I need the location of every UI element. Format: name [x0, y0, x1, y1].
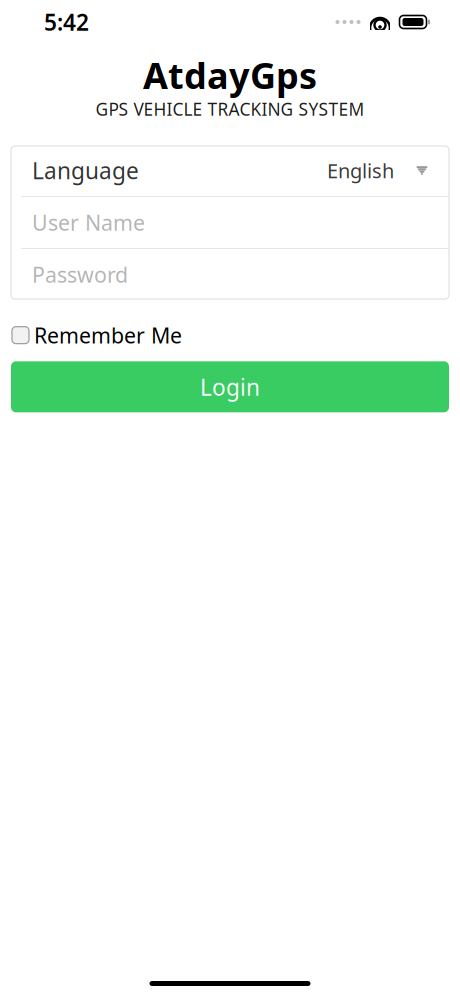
button[interactable]: Language	[11, 145, 449, 196]
staticText: Password	[32, 260, 128, 289]
staticText: User Name	[32, 208, 145, 237]
staticText: English	[327, 157, 394, 184]
staticText: Login	[200, 372, 260, 402]
staticText: AtdayGps	[143, 51, 317, 99]
button[interactable]: Remember Me	[12, 317, 182, 353]
button[interactable]: Password	[11, 249, 449, 300]
staticText: Remember Me	[34, 321, 182, 349]
staticText: Language	[32, 155, 139, 185]
staticText: 5:42	[44, 7, 89, 37]
button[interactable]: Login	[11, 361, 449, 412]
button[interactable]: User Name	[11, 197, 449, 248]
staticText: GPS VEHICLE TRACKING SYSTEM	[95, 97, 364, 120]
